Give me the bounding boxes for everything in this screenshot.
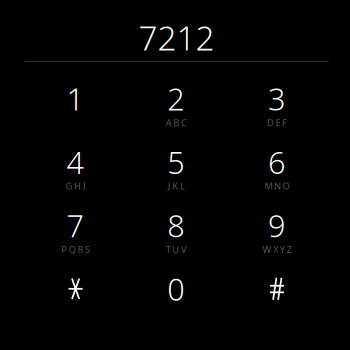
staticText: 4 <box>67 142 85 182</box>
button[interactable]: 5 J K L <box>126 145 227 208</box>
button[interactable]: 2 A B C <box>126 82 227 145</box>
staticText: DEF <box>267 116 287 129</box>
button[interactable]: 7 P Q R S <box>25 208 126 272</box>
staticText: 0 <box>167 268 185 309</box>
staticText: PQRS <box>61 243 90 256</box>
staticText: 7 <box>67 205 85 246</box>
staticText: 8 <box>167 205 185 246</box>
staticText: GHI <box>65 180 86 192</box>
button[interactable]: Pound <box>227 272 327 335</box>
button[interactable]: 9 W X Y Z <box>227 208 327 272</box>
staticText: 5 <box>167 142 185 182</box>
staticText: 6 <box>268 142 286 182</box>
button[interactable]: 1 <box>25 82 126 145</box>
button[interactable]: Star <box>25 272 126 335</box>
button[interactable]: 4 G H I <box>25 145 126 208</box>
button[interactable]: 0 <box>126 272 227 335</box>
staticText: 1 <box>67 78 85 119</box>
staticText: 7212 <box>138 15 214 60</box>
button[interactable]: 8 T U V <box>126 208 227 272</box>
staticText: 2 <box>167 78 185 119</box>
staticText: 9 <box>268 205 286 246</box>
staticText: WXYZ <box>263 243 291 256</box>
button[interactable]: 6 M N O <box>227 145 327 208</box>
staticText: ABC <box>166 116 187 129</box>
staticText: MNO <box>264 180 290 192</box>
staticText: TUV <box>166 243 187 256</box>
staticText: 3 <box>268 78 286 119</box>
staticText: JKL <box>168 180 185 192</box>
button[interactable]: Entered number, 7212 <box>0 0 350 61</box>
button[interactable]: 3 D E F <box>227 82 327 145</box>
